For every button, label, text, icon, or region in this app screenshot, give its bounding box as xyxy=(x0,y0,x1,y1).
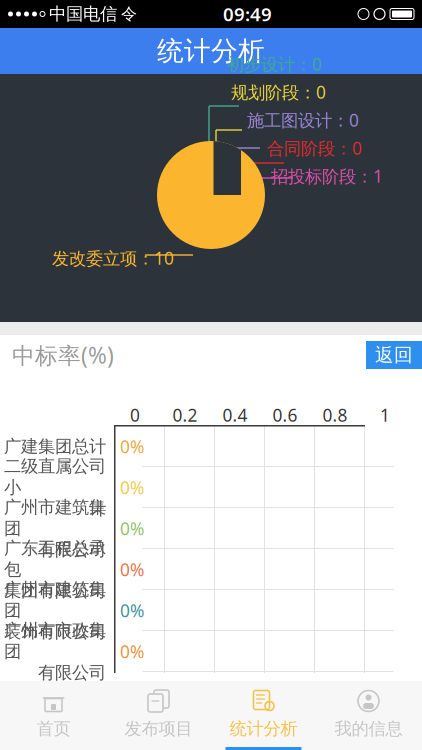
staticText: 装饰有限公司 xyxy=(4,621,106,642)
staticText: 09:49 xyxy=(223,2,272,26)
button[interactable]: 我的信息 xyxy=(316,681,421,750)
staticText: 广州市市政集团 xyxy=(4,620,106,662)
staticText: 广州市建筑集团 xyxy=(4,579,106,621)
staticText: 首页 xyxy=(36,718,70,739)
staticText: 0.2 xyxy=(172,403,197,426)
staticText: 广建集团总计 xyxy=(4,436,106,457)
button[interactable]: 发布项目 xyxy=(106,681,211,750)
staticText: 统计分析 xyxy=(157,35,265,67)
staticText: 统计分析 xyxy=(229,718,297,739)
staticText: 0% xyxy=(120,517,144,540)
staticText: 有限公司 xyxy=(38,539,106,560)
staticText: 返回 xyxy=(375,343,413,366)
staticText: 初步设计：0 xyxy=(227,52,322,75)
staticText: 0% xyxy=(120,640,144,663)
staticText: 二级直属公司小 xyxy=(4,456,106,498)
staticText: 令 xyxy=(121,4,137,24)
staticText: 0% xyxy=(120,476,144,499)
staticText: 发布项目 xyxy=(124,718,192,739)
staticText: 施工图设计：0 xyxy=(247,108,359,131)
staticText: 中国电信 xyxy=(49,3,117,25)
staticText: 发改委立项：10 xyxy=(52,246,174,269)
staticText: 1 xyxy=(380,403,390,426)
staticText: 广州市建筑集团 xyxy=(4,497,106,539)
button[interactable]: 返回 xyxy=(366,341,422,369)
staticText: 集团有限公司 xyxy=(4,580,106,601)
staticText: 0.6 xyxy=(272,403,297,426)
staticText: 招投标阶段：1 xyxy=(271,164,383,187)
staticText: 我的信息 xyxy=(334,718,402,739)
staticText: 0.4 xyxy=(222,403,247,426)
button[interactable]: 统计分析 xyxy=(211,681,316,750)
staticText: 规划阶段：0 xyxy=(231,80,326,103)
button[interactable]: 首页 xyxy=(1,681,106,750)
staticText: 广东工程总承包 xyxy=(4,538,106,580)
staticText: 0.8 xyxy=(322,403,347,426)
staticText: 中标率(%) xyxy=(12,340,114,370)
staticText: 0 xyxy=(130,403,140,426)
staticText: 0% xyxy=(120,558,144,581)
staticText: 合同阶段：0 xyxy=(267,136,362,159)
staticText: 0% xyxy=(120,599,144,622)
staticText: 有限公司 xyxy=(38,662,106,683)
staticText: 0% xyxy=(120,435,144,458)
staticText: 计 xyxy=(89,498,106,519)
